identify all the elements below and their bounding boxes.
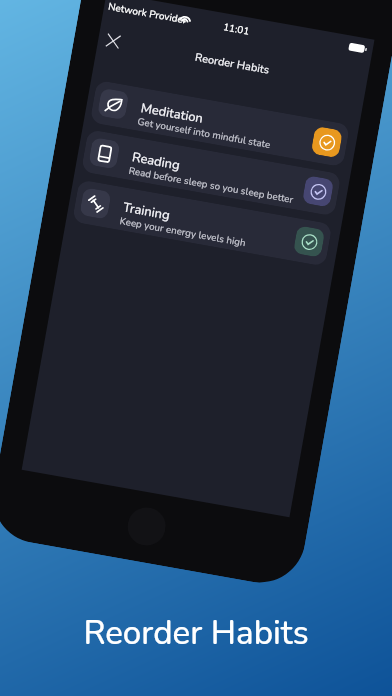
staticText: Get yourself into mindful state xyxy=(136,115,272,151)
button[interactable]: Close xyxy=(98,26,128,56)
staticText: Reorder Habits xyxy=(97,32,367,95)
button[interactable]: Training xyxy=(72,179,332,267)
staticText: 11:01 xyxy=(101,0,371,60)
button[interactable]: Reading xyxy=(81,129,341,216)
button[interactable]: Complete Training xyxy=(293,225,325,258)
button[interactable]: Complete Reading xyxy=(302,175,334,208)
staticText: Meditation xyxy=(139,99,204,128)
staticText: Reorder Habits xyxy=(0,611,392,656)
staticText: Network Provider xyxy=(107,0,188,27)
staticText: Keep your energy levels high xyxy=(119,214,247,249)
staticText: Training xyxy=(122,198,172,225)
staticText: Read before sleep so you sleep better xyxy=(128,164,294,206)
button[interactable]: Meditation xyxy=(90,80,350,167)
button[interactable]: Complete Meditation xyxy=(311,126,343,158)
staticText: Reading xyxy=(131,148,182,175)
